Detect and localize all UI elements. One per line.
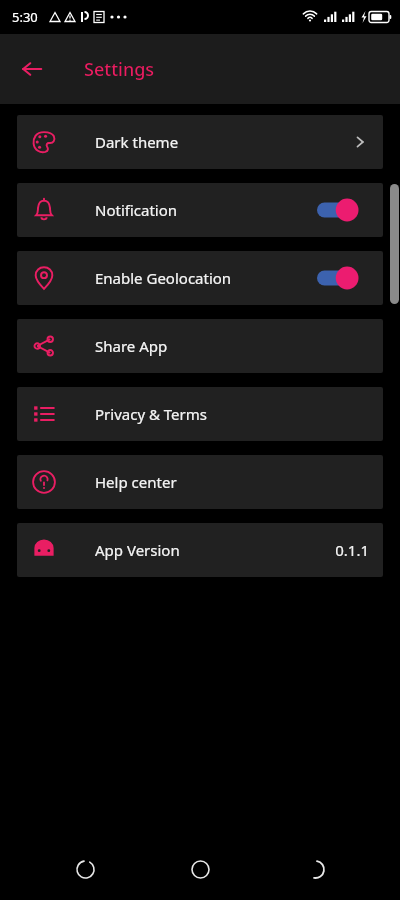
button[interactable]: Dark theme [17, 115, 383, 169]
button[interactable]: App Version [17, 523, 383, 577]
button[interactable]: Toggle [317, 263, 369, 293]
staticText: Share App [95, 336, 168, 356]
staticText: App Version [95, 540, 180, 560]
staticText: Enable Geolocation [95, 268, 232, 288]
button[interactable]: Home [170, 839, 230, 899]
staticText: Privacy & Terms [95, 404, 207, 424]
button[interactable]: Enable Geolocation [17, 251, 383, 305]
staticText: 0.1.1 [335, 540, 369, 560]
button[interactable]: Share App [17, 319, 383, 373]
button[interactable]: Privacy & Terms [17, 387, 383, 441]
button[interactable]: Recents [285, 839, 345, 899]
button[interactable]: Notification [17, 183, 383, 237]
staticText: 5:30 [12, 8, 38, 26]
staticText: Settings [84, 57, 155, 82]
button[interactable]: Back [10, 47, 54, 91]
staticText: Help center [95, 472, 177, 492]
staticText: Dark theme [95, 132, 179, 152]
button[interactable]: Back [55, 839, 115, 899]
button[interactable]: Toggle [317, 195, 369, 225]
button[interactable]: Help center [17, 455, 383, 509]
staticText: Notification [95, 200, 178, 220]
